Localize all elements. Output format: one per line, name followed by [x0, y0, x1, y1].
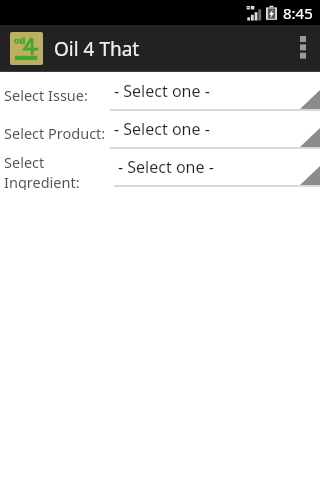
- button[interactable]: More options: [286, 25, 320, 72]
- staticText: Select Ingredient:: [4, 152, 114, 190]
- staticText: Select Product:: [4, 123, 110, 143]
- staticText: Select Issue:: [4, 85, 110, 105]
- button[interactable]: Select Ingredient:: [0, 152, 320, 190]
- button[interactable]: Select Issue:: [0, 76, 320, 114]
- staticText: - Select one -: [118, 156, 214, 178]
- staticText: 8:45: [283, 3, 313, 23]
- button[interactable]: Select Product:: [0, 114, 320, 152]
- staticText: - Select one -: [114, 80, 210, 102]
- staticText: - Select one -: [114, 118, 210, 140]
- staticText: Oil 4 That: [54, 36, 140, 62]
